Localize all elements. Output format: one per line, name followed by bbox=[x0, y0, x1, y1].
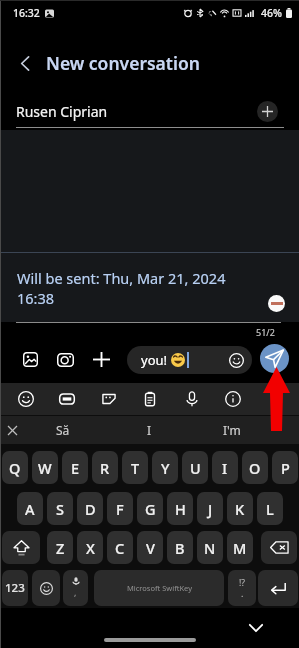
button[interactable]: Hide keyboard bbox=[244, 616, 268, 640]
button[interactable]: G bbox=[137, 492, 163, 525]
staticText: 123 bbox=[5, 580, 25, 596]
button[interactable]: V bbox=[137, 531, 163, 564]
staticText: U bbox=[190, 458, 201, 478]
staticText: W bbox=[38, 458, 52, 478]
button[interactable]: D bbox=[77, 492, 103, 525]
staticText: Microsoft SwiftKey bbox=[127, 583, 192, 593]
staticText: P bbox=[281, 458, 290, 478]
button[interactable]: Stickers bbox=[95, 385, 123, 413]
staticText: Z bbox=[56, 538, 65, 558]
staticText: I bbox=[147, 422, 152, 438]
button[interactable]: Voice message bbox=[178, 385, 206, 413]
staticText: 51/2 bbox=[256, 326, 275, 338]
button[interactable]: Emoji keyboard bbox=[32, 570, 60, 606]
button[interactable]: Back bbox=[11, 49, 39, 77]
staticText: L bbox=[266, 499, 274, 519]
staticText: J bbox=[208, 499, 213, 519]
button[interactable]: Punctuation bbox=[228, 570, 256, 606]
button[interactable]: P bbox=[272, 451, 298, 484]
button[interactable]: N bbox=[197, 531, 223, 564]
staticText: V bbox=[146, 538, 155, 558]
button[interactable]: More attachments bbox=[88, 346, 115, 373]
button[interactable]: Send bbox=[260, 344, 289, 373]
staticText: you! bbox=[141, 351, 168, 369]
button[interactable]: Add recipient bbox=[257, 101, 278, 122]
button[interactable]: GIF bbox=[53, 385, 81, 413]
button[interactable]: Camera bbox=[52, 346, 79, 373]
button[interactable]: X bbox=[77, 531, 103, 564]
button[interactable]: H bbox=[167, 492, 193, 525]
button[interactable]: T bbox=[122, 451, 148, 484]
staticText: New conversation bbox=[46, 51, 200, 75]
button[interactable]: C bbox=[107, 531, 133, 564]
button[interactable]: Space bbox=[94, 570, 224, 606]
button[interactable]: Z bbox=[47, 531, 73, 564]
staticText: D bbox=[85, 499, 96, 519]
staticText: K bbox=[235, 499, 245, 519]
button[interactable]: you! bbox=[127, 346, 252, 374]
button[interactable]: Info bbox=[219, 385, 247, 413]
staticText: Să bbox=[56, 422, 70, 438]
staticText: 46% bbox=[261, 6, 282, 20]
staticText: I bbox=[222, 458, 228, 478]
button[interactable]: R bbox=[92, 451, 118, 484]
button[interactable]: Shift bbox=[2, 531, 40, 564]
staticText: C bbox=[115, 538, 125, 558]
staticText: Y bbox=[161, 458, 170, 478]
staticText: !? bbox=[239, 577, 245, 589]
button[interactable]: L bbox=[257, 492, 283, 525]
button[interactable]: Să bbox=[28, 416, 98, 444]
button[interactable]: F bbox=[107, 492, 133, 525]
button[interactable]: Enter bbox=[258, 570, 298, 606]
button[interactable]: B bbox=[167, 531, 193, 564]
button[interactable]: Cancel scheduled message bbox=[268, 295, 285, 312]
staticText: H bbox=[175, 499, 186, 519]
staticText: S bbox=[56, 499, 64, 519]
staticText: Rusen Ciprian bbox=[16, 102, 108, 121]
staticText: A bbox=[25, 499, 35, 519]
button[interactable]: M bbox=[227, 531, 253, 564]
staticText: Q bbox=[9, 458, 21, 478]
staticText: F bbox=[116, 499, 124, 519]
button[interactable]: Emoji bbox=[12, 385, 40, 413]
button[interactable]: Backspace bbox=[261, 531, 297, 564]
button[interactable]: Gallery bbox=[17, 346, 44, 373]
staticText: G bbox=[145, 499, 156, 519]
staticText: B bbox=[175, 538, 185, 558]
staticText: M bbox=[233, 538, 247, 558]
staticText: . bbox=[241, 587, 244, 599]
button[interactable]: I'm bbox=[197, 416, 267, 444]
staticText: Will be sent: Thu, Mar 21, 2024 16:38 bbox=[17, 268, 226, 309]
button[interactable]: A bbox=[17, 492, 43, 525]
button[interactable]: Clipboard bbox=[136, 385, 164, 413]
button[interactable]: I bbox=[212, 451, 238, 484]
staticText: T bbox=[131, 458, 140, 478]
staticText: N bbox=[204, 538, 216, 558]
button[interactable]: Collapse suggestions bbox=[0, 416, 25, 444]
button[interactable]: Voice input bbox=[63, 570, 88, 606]
staticText: X bbox=[86, 538, 95, 558]
staticText: R bbox=[100, 458, 110, 478]
button[interactable]: S bbox=[47, 492, 73, 525]
button[interactable]: J bbox=[197, 492, 223, 525]
staticText: O bbox=[249, 458, 261, 478]
staticText: E bbox=[71, 458, 80, 478]
button[interactable]: O bbox=[242, 451, 268, 484]
staticText: , bbox=[74, 586, 77, 598]
button[interactable]: I bbox=[114, 416, 184, 444]
button[interactable]: E bbox=[62, 451, 88, 484]
button[interactable]: W bbox=[32, 451, 58, 484]
button[interactable]: Numbers bbox=[2, 570, 28, 606]
button[interactable]: Y bbox=[152, 451, 178, 484]
button[interactable]: Q bbox=[2, 451, 28, 484]
button[interactable]: K bbox=[227, 492, 253, 525]
button[interactable]: U bbox=[182, 451, 208, 484]
staticText: 16:32 bbox=[13, 6, 40, 20]
staticText: I'm bbox=[223, 422, 241, 438]
